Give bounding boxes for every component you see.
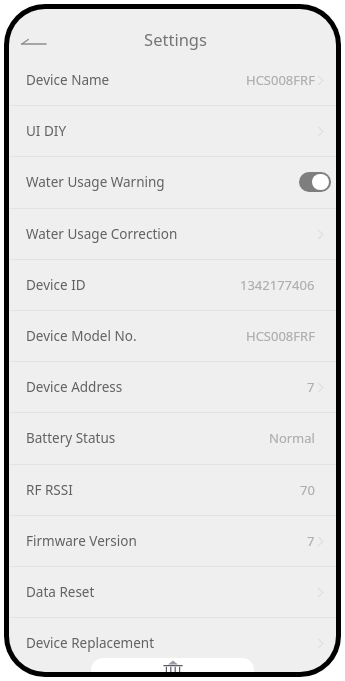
button[interactable]: UI DIY	[9, 106, 336, 156]
staticText: Device ID	[26, 276, 86, 294]
staticText: Device Model No.	[26, 327, 137, 345]
staticText: Settings	[144, 28, 207, 50]
staticText: Water Usage Correction	[26, 225, 178, 243]
staticText: 7	[307, 532, 315, 550]
staticText: Data Reset	[26, 583, 95, 601]
staticText: Water Usage Warning	[26, 173, 165, 191]
staticText: Device Replacement	[26, 634, 155, 652]
button[interactable]: Device Model No.	[9, 311, 336, 361]
staticText: 1342177406	[240, 276, 315, 294]
staticText: 7	[307, 378, 315, 396]
button[interactable]: Device Replacement	[9, 618, 336, 668]
button[interactable]: RF RSSI	[9, 465, 336, 515]
staticText: 70	[300, 481, 315, 499]
button[interactable]: Firmware Version	[9, 516, 336, 566]
staticText: Device Address	[26, 378, 123, 396]
button[interactable]: Device Address	[9, 362, 336, 412]
staticText: Firmware Version	[26, 532, 137, 550]
staticText: HCS008FRF	[246, 71, 315, 89]
staticText: Normal	[269, 429, 315, 447]
button[interactable]: Device Name	[9, 55, 336, 105]
staticText: Battery Status	[26, 429, 116, 447]
button[interactable]: Home	[91, 658, 254, 672]
button[interactable]: Device ID	[9, 260, 336, 310]
staticText: RF RSSI	[26, 481, 73, 499]
button[interactable]: Back	[21, 32, 51, 55]
button[interactable]: Water usage warning toggle	[299, 172, 331, 192]
staticText: HCS008FRF	[246, 327, 315, 345]
staticText: UI DIY	[26, 122, 67, 140]
button[interactable]: Water Usage Warning	[9, 157, 336, 207]
button[interactable]: Water Usage Correction	[9, 209, 336, 259]
staticText: Device Name	[26, 71, 110, 89]
button[interactable]: Battery Status	[9, 413, 336, 463]
button[interactable]: Data Reset	[9, 567, 336, 617]
